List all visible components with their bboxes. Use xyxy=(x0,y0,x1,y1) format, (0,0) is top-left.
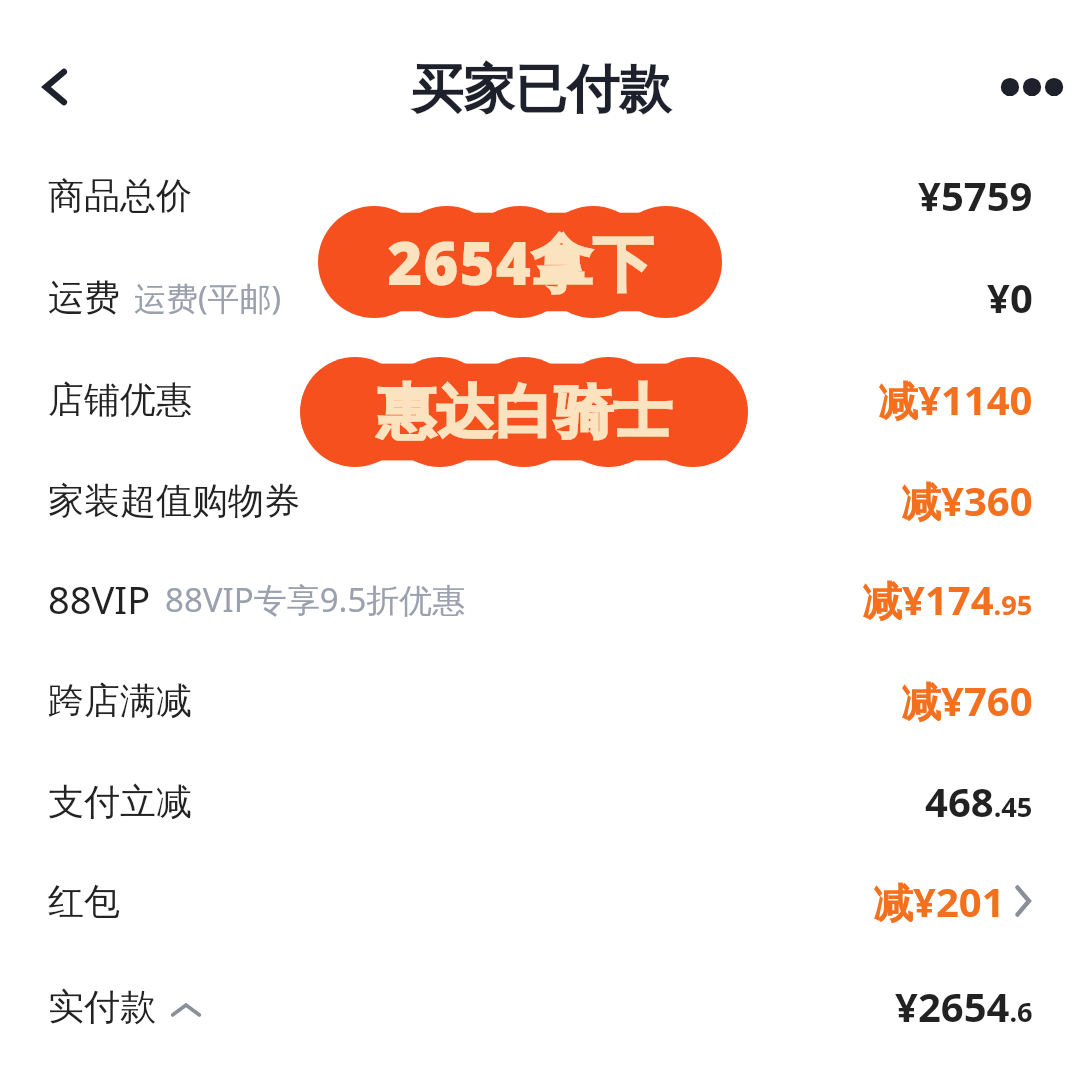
button[interactable]: 家装超值购物券 xyxy=(0,450,1081,550)
staticText: 2654拿下 xyxy=(387,221,654,303)
button[interactable]: 跨店满减 xyxy=(0,650,1081,750)
staticText: 减¥174.95 xyxy=(862,572,1033,627)
button[interactable]: 实付款 xyxy=(0,956,1081,1056)
staticText: 减¥201 xyxy=(873,874,1005,929)
button[interactable]: 运费 xyxy=(0,247,1081,347)
staticText: 惠达白骑士 xyxy=(377,376,672,449)
staticText: 跨店满减 xyxy=(48,678,192,723)
button[interactable]: 红包 xyxy=(0,851,1081,951)
button[interactable]: More options xyxy=(988,43,1076,131)
staticText: 买家已付款 xyxy=(411,57,671,123)
staticText: ¥5759 xyxy=(918,168,1033,222)
staticText: 运费(平邮) xyxy=(134,276,282,320)
staticText: 实付款 xyxy=(48,984,156,1029)
staticText: 减¥760 xyxy=(901,673,1033,728)
button[interactable]: 店铺优惠 xyxy=(0,349,1081,449)
staticText: 运费 xyxy=(48,275,120,320)
button[interactable]: 商品总价 xyxy=(0,145,1081,245)
staticText: 店铺优惠 xyxy=(48,377,192,422)
staticText: 88VIP专享9.5折优惠 xyxy=(165,577,466,622)
staticText: 红包 xyxy=(48,879,120,924)
staticText: 减¥360 xyxy=(901,473,1033,528)
staticText: 减¥1140 xyxy=(878,372,1033,427)
button[interactable]: 88VIP xyxy=(0,549,1081,649)
staticText: 88VIP xyxy=(48,573,151,625)
staticText: 468.45 xyxy=(925,774,1033,828)
button[interactable]: Back xyxy=(12,43,100,131)
staticText: ¥2654.6 xyxy=(895,979,1033,1033)
staticText: ¥0 xyxy=(987,270,1033,324)
staticText: 家装超值购物券 xyxy=(48,478,300,523)
button[interactable]: 支付立减 xyxy=(0,751,1081,851)
staticText: 支付立减 xyxy=(48,779,192,824)
staticText: 商品总价 xyxy=(48,173,192,218)
